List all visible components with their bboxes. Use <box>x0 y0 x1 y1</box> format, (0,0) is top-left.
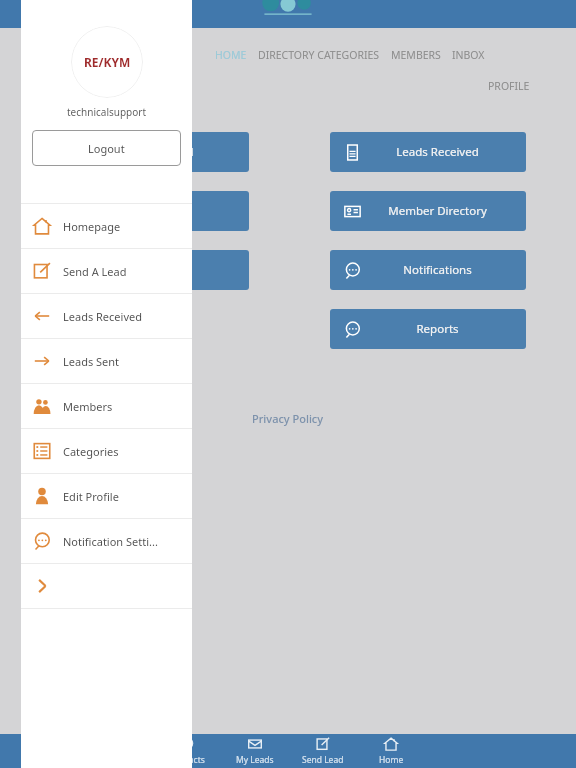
staticText: HOME <box>215 48 247 62</box>
staticText: Categories <box>63 444 119 459</box>
staticText: DIRECTORY CATEGORIES <box>258 48 380 62</box>
button[interactable]: Members <box>21 384 192 428</box>
button[interactable]: Send Lead <box>289 734 357 768</box>
button[interactable]: HOME <box>215 45 247 65</box>
staticText: Send A Lead <box>63 264 127 279</box>
button[interactable]: Member Directory <box>330 191 526 231</box>
button[interactable]: Logout <box>32 130 181 166</box>
button[interactable]: Leads Sent <box>53 191 249 231</box>
button[interactable]: INBOX <box>452 45 485 65</box>
button[interactable]: Notification Setti... <box>21 519 192 563</box>
button[interactable]: PROFILE <box>488 76 530 96</box>
staticText: Contacts <box>170 754 205 766</box>
staticText: Leads Received <box>396 144 479 160</box>
staticText: Homepage <box>63 219 121 234</box>
staticText: MEMBERS <box>391 48 441 62</box>
staticText: Leads Sent <box>63 354 120 369</box>
button[interactable]: Contacts <box>153 734 221 768</box>
staticText: Send A Lead <box>127 144 194 160</box>
button[interactable]: MEMBERS <box>391 45 441 65</box>
staticText: Member Directory <box>388 203 487 219</box>
staticText: Notification Setti... <box>63 534 158 549</box>
staticText: My Leads <box>236 754 274 766</box>
staticText: Leads Sent <box>131 203 190 219</box>
button[interactable]: Leads Received <box>21 294 192 338</box>
staticText: PROFILE <box>488 79 530 93</box>
staticText: technicalsupport <box>67 105 147 119</box>
button[interactable]: Edit Profile <box>21 474 192 518</box>
staticText: Notifications <box>403 262 472 278</box>
button[interactable]: Homepage <box>21 204 192 248</box>
button[interactable]: Send A Lead <box>21 249 192 293</box>
button[interactable]: Categories <box>53 250 249 290</box>
button[interactable]: My Leads <box>221 734 289 768</box>
button[interactable]: Reports <box>330 309 526 349</box>
staticText: Edit Profile <box>63 489 119 504</box>
button[interactable]: Categories <box>21 429 192 473</box>
button[interactable]: Leads Received <box>330 132 526 172</box>
staticText: Home <box>379 754 404 766</box>
staticText: Privacy Policy <box>252 411 324 426</box>
staticText: Reports <box>416 321 459 337</box>
staticText: RE/KYM <box>84 54 131 70</box>
button[interactable]: Send A Lead <box>53 132 249 172</box>
staticText: Members <box>63 399 113 414</box>
button[interactable]: Leads Sent <box>21 339 192 383</box>
button[interactable]: Notifications <box>330 250 526 290</box>
button[interactable]: DIRECTORY CATEGORIES <box>258 45 380 65</box>
button[interactable]: Home <box>357 734 425 768</box>
button[interactable]: Expand more <box>21 564 192 608</box>
staticText: Send Lead <box>302 754 344 766</box>
button[interactable]: Privacy Policy <box>246 407 330 430</box>
staticText: Logout <box>88 141 125 156</box>
staticText: INBOX <box>452 48 485 62</box>
staticText: Leads Received <box>63 309 142 324</box>
